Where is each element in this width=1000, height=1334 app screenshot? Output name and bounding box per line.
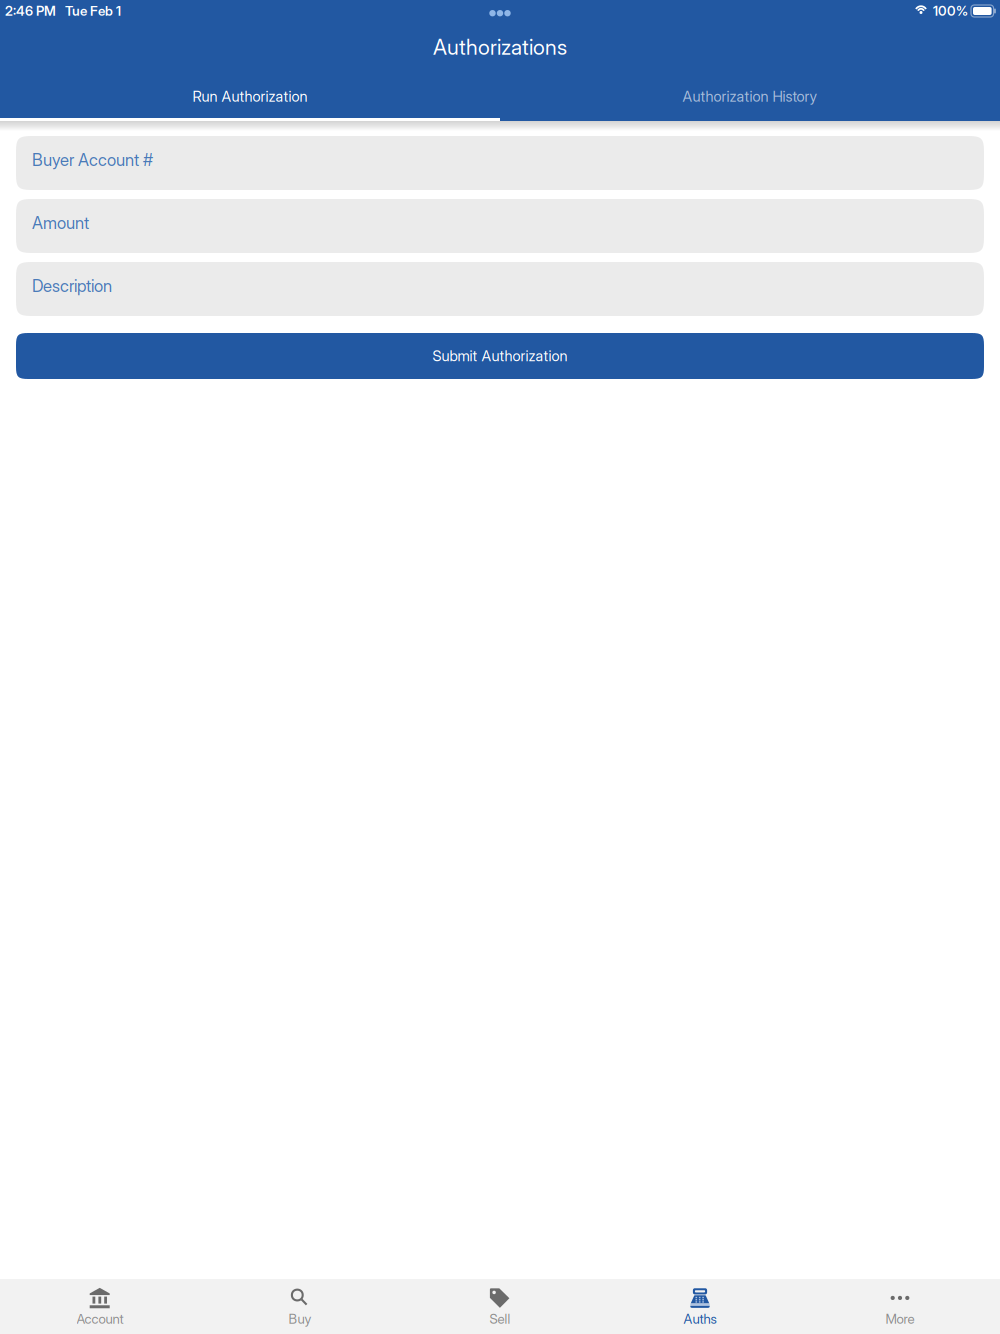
button[interactable]: Buy (200, 1279, 400, 1334)
staticText: Amount (32, 213, 89, 233)
staticText: Buy (288, 1311, 311, 1327)
staticText: Tue Feb 1 (65, 3, 121, 19)
button[interactable]: Account (0, 1279, 200, 1334)
button[interactable]: Submit Authorization (16, 333, 984, 379)
staticText: 2:46 PM (5, 3, 56, 19)
staticText: 100% (933, 3, 968, 19)
staticText: Auths (683, 1311, 716, 1327)
button[interactable]: Sell (400, 1279, 600, 1334)
staticText: Account (76, 1311, 123, 1327)
staticText: Authorization History (682, 88, 817, 105)
staticText: Authorizations (433, 34, 567, 60)
button[interactable]: Run Authorization (0, 72, 500, 121)
staticText: Buyer Account # (32, 150, 153, 170)
staticText: Submit Authorization (432, 347, 567, 365)
staticText: Description (32, 276, 112, 296)
staticText: Sell (489, 1311, 510, 1327)
staticText: Run Authorization (192, 88, 307, 105)
staticText: More (885, 1311, 914, 1327)
button[interactable]: Authorization History (500, 72, 1000, 121)
button[interactable]: More (800, 1279, 1000, 1334)
button[interactable]: Auths (600, 1279, 800, 1334)
